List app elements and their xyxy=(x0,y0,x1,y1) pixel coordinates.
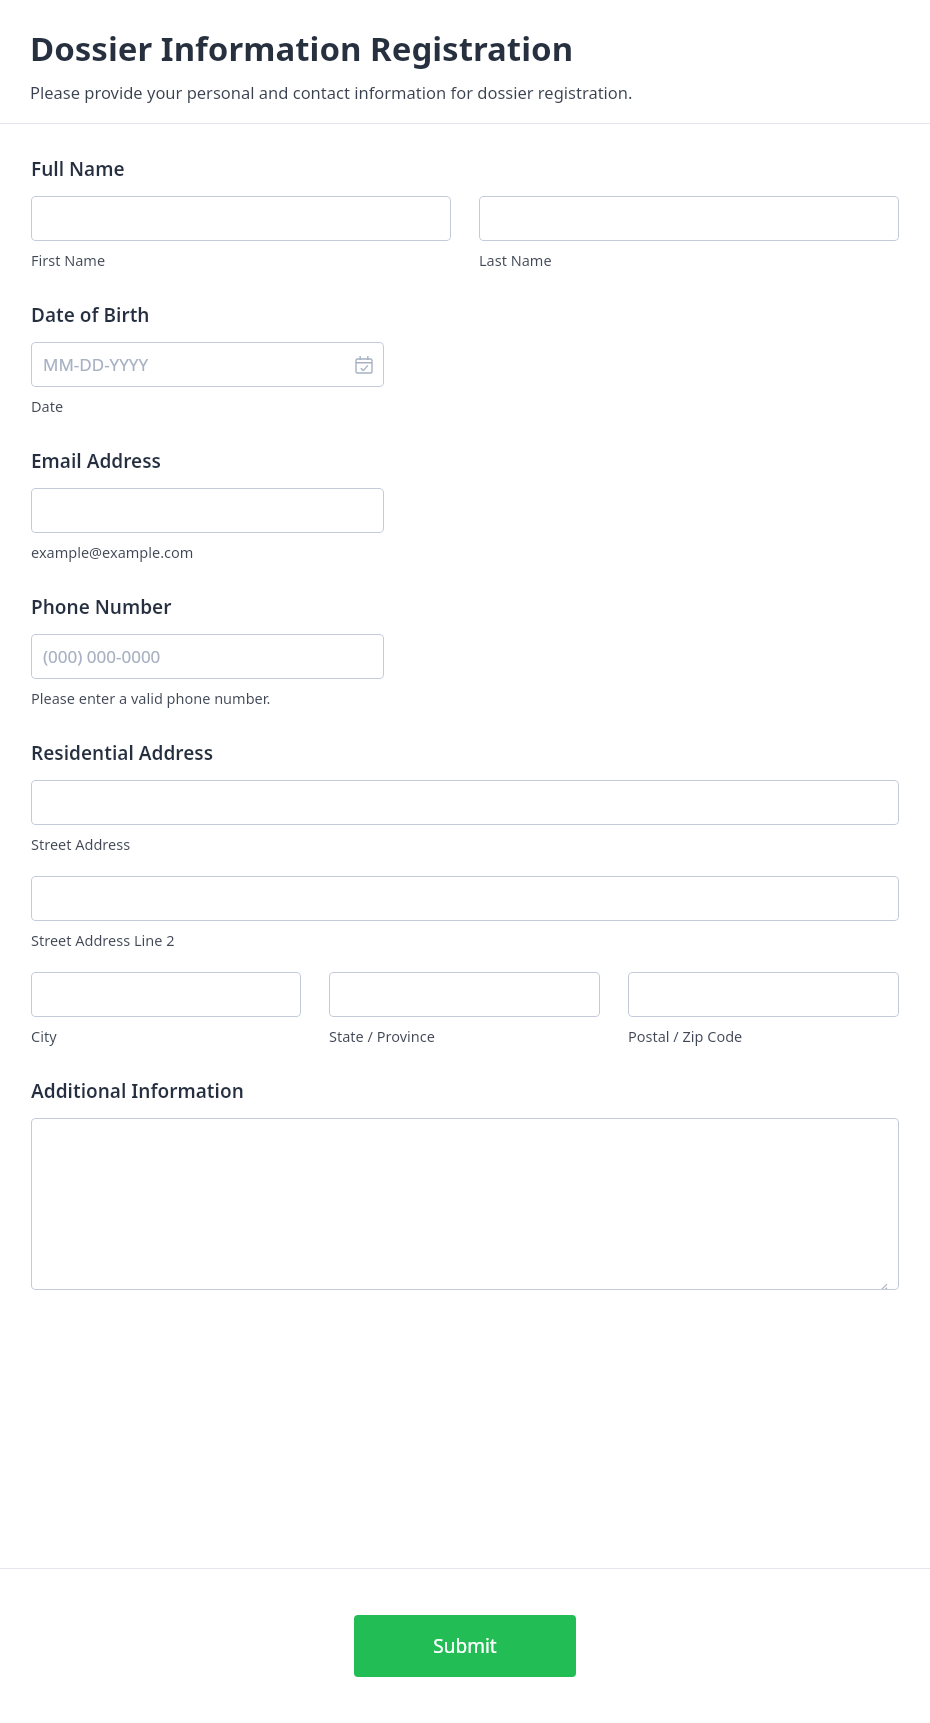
staticText: Dossier Information Registration xyxy=(30,26,574,71)
staticText: Street Address xyxy=(31,834,131,854)
staticText: (000) 000-0000 xyxy=(43,645,161,668)
button[interactable] xyxy=(31,488,384,533)
button[interactable] xyxy=(329,972,600,1017)
staticText: State / Province xyxy=(329,1026,435,1046)
staticText: Phone Number xyxy=(31,594,172,620)
button[interactable] xyxy=(31,196,451,241)
button[interactable]: Submit xyxy=(354,1615,576,1677)
button[interactable] xyxy=(628,972,899,1017)
staticText: Email Address xyxy=(31,448,161,474)
staticText: City xyxy=(31,1026,57,1046)
staticText: Date xyxy=(31,396,64,416)
button[interactable] xyxy=(31,972,301,1017)
staticText: First Name xyxy=(31,250,106,270)
button[interactable] xyxy=(31,876,899,921)
button[interactable]: MM-DD-YYYY xyxy=(31,342,384,387)
button[interactable] xyxy=(479,196,899,241)
staticText: MM-DD-YYYY xyxy=(43,353,149,376)
staticText: Residential Address xyxy=(31,740,214,766)
staticText: Please enter a valid phone number. xyxy=(31,688,271,708)
button[interactable]: (000) 000-0000 xyxy=(31,634,384,679)
other: Open calendar xyxy=(356,356,372,373)
button[interactable] xyxy=(31,780,899,825)
staticText: Additional Information xyxy=(31,1078,244,1104)
staticText: Postal / Zip Code xyxy=(628,1026,743,1046)
staticText: Last Name xyxy=(479,250,552,270)
staticText: Street Address Line 2 xyxy=(31,930,175,950)
button[interactable] xyxy=(31,1118,899,1290)
staticText: Date of Birth xyxy=(31,302,150,328)
staticText: Full Name xyxy=(31,156,125,182)
staticText: Please provide your personal and contact… xyxy=(30,81,633,103)
staticText: Submit xyxy=(433,1633,497,1659)
staticText: example@example.com xyxy=(31,542,194,562)
